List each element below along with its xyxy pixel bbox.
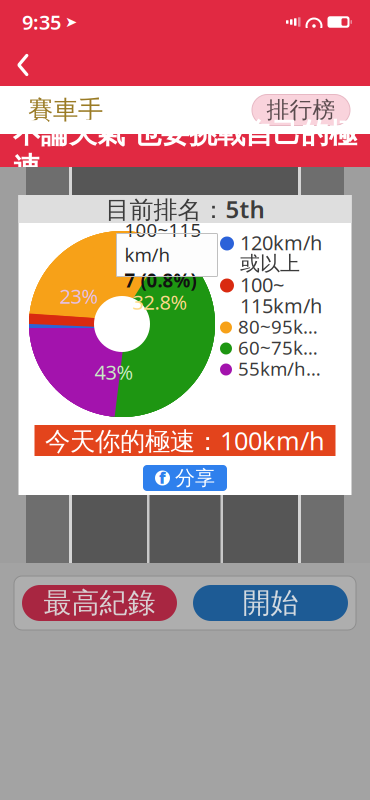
staticText: 55km/h… bbox=[238, 356, 321, 381]
button[interactable]: 最高紀錄 bbox=[22, 585, 177, 621]
staticText: 100~115km/h bbox=[124, 217, 201, 267]
staticText: 80~95k… bbox=[238, 314, 318, 339]
staticText: 分享 bbox=[175, 466, 215, 490]
staticText: 目前排名：5th bbox=[105, 193, 264, 225]
staticText: 7 (0.8%) bbox=[124, 268, 196, 293]
staticText: f bbox=[159, 467, 166, 488]
button[interactable]: 開始 bbox=[193, 585, 348, 621]
button[interactable]: 排行榜 bbox=[252, 94, 350, 125]
staticText: 60~75k… bbox=[238, 335, 318, 360]
staticText: 100~ bbox=[240, 271, 284, 298]
button[interactable]: f bbox=[143, 465, 227, 491]
staticText: 23% bbox=[59, 283, 98, 309]
staticText: 32.8% bbox=[132, 289, 187, 315]
staticText: 43% bbox=[94, 359, 133, 385]
staticText: 排行榜 bbox=[266, 96, 335, 124]
staticText: 不論天氣 也要挑戰自己的極速 bbox=[13, 116, 357, 185]
staticText: 115km/h bbox=[240, 292, 322, 319]
staticText: 賽車手 bbox=[28, 94, 103, 125]
staticText: 9:35 bbox=[22, 9, 61, 35]
staticText: 或以上 bbox=[240, 251, 300, 276]
staticText: ➤ bbox=[65, 14, 77, 30]
staticText: 最高紀錄 bbox=[43, 586, 155, 620]
staticText: 120km/h bbox=[240, 229, 322, 256]
staticText: 開始 bbox=[242, 586, 298, 620]
staticText: 今天你的極速：100km/h bbox=[45, 424, 325, 457]
button[interactable]: Back bbox=[0, 44, 46, 86]
